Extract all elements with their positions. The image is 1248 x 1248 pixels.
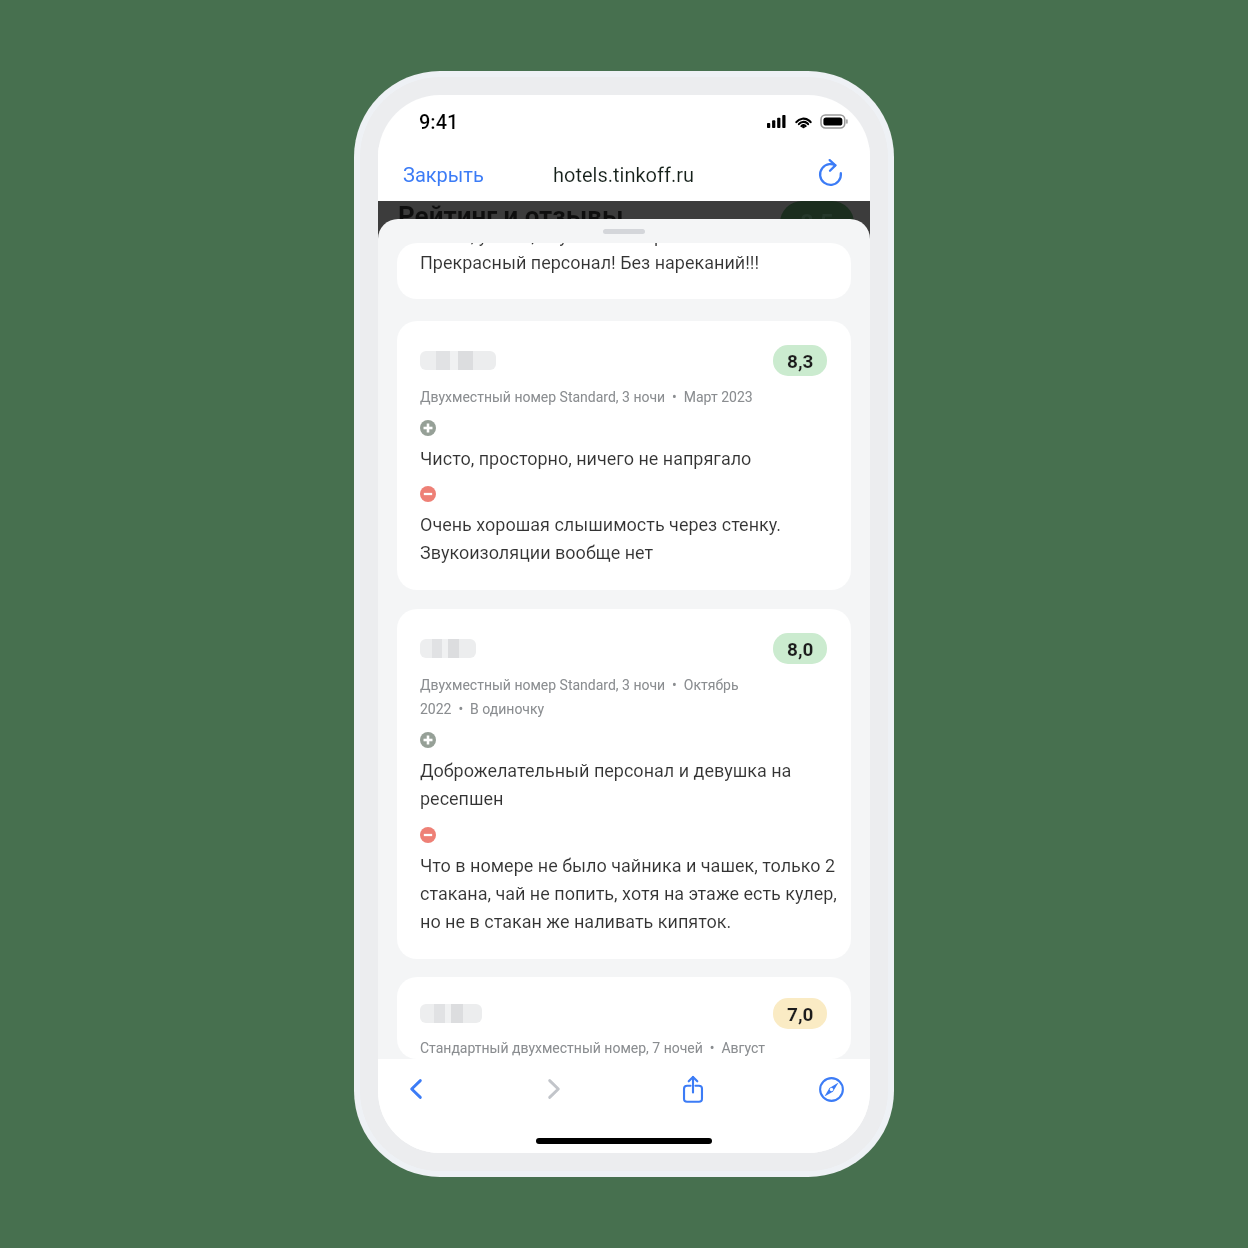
button[interactable]: Share bbox=[671, 1067, 715, 1111]
staticText: 8,0 bbox=[787, 638, 814, 660]
button[interactable]: Open in Safari bbox=[809, 1067, 853, 1111]
staticText: Чисто, просторно, ничего не напрягало bbox=[420, 448, 752, 469]
staticText: 8,3 bbox=[787, 350, 814, 372]
button[interactable]: Forward bbox=[532, 1067, 576, 1111]
staticText: Закрыть bbox=[403, 163, 484, 186]
staticText: Стандартный двухместный номер, 7 ночей •… bbox=[420, 1040, 770, 1056]
button[interactable]: Reload page bbox=[809, 153, 870, 196]
button[interactable]: 8,0 bbox=[397, 609, 851, 959]
staticText: 7,0 bbox=[787, 1003, 814, 1025]
staticText: Доброжелательный персонал и девушка на р… bbox=[420, 760, 840, 810]
staticText: Двухместный номер Standard, 3 ночи • Мар… bbox=[420, 389, 770, 405]
button[interactable]: Back bbox=[394, 1067, 438, 1111]
staticText: 9:41 bbox=[419, 110, 459, 133]
staticText: Прекрасный персонал! Без нареканий!!! bbox=[420, 252, 760, 273]
button[interactable]: Закрыть bbox=[378, 153, 498, 196]
button[interactable]: 8,3 bbox=[397, 321, 851, 590]
staticText: Чисто, уютно, вкусный завтрак bbox=[420, 243, 684, 246]
staticText: 8,5 bbox=[800, 209, 834, 237]
staticText: hotels.tinkoff.ru bbox=[553, 163, 695, 186]
button[interactable]: 7,0 bbox=[397, 977, 851, 1059]
button[interactable]: Чисто, уютно, вкусный завтрак bbox=[397, 243, 851, 299]
staticText: Что в номере не было чайника и чашек, то… bbox=[420, 855, 840, 933]
staticText: Очень хорошая слышимость через стенку. З… bbox=[420, 514, 840, 564]
staticText: Двухместный номер Standard, 3 ночи • Окт… bbox=[420, 677, 770, 717]
staticText: Рейтинг и отзывы bbox=[398, 201, 624, 231]
